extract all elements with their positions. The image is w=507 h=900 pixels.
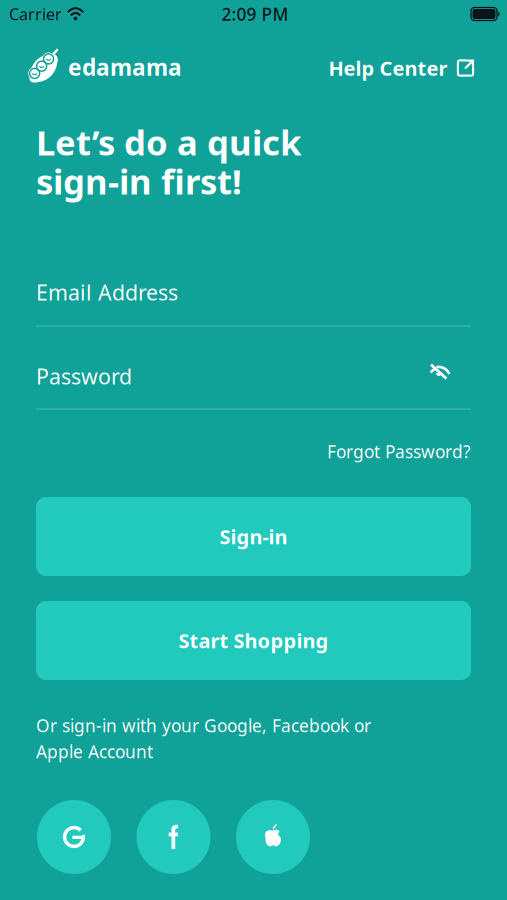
staticText: Or sign-in with your Google, Facebook or: [36, 714, 371, 737]
button[interactable]: Forgot Password?: [36, 440, 471, 462]
staticText: Carrier: [9, 3, 62, 25]
button[interactable]: Show password: [428, 358, 452, 382]
button[interactable]: edamama home: [24, 48, 182, 86]
button[interactable]: Sign in with Google: [37, 800, 111, 874]
button[interactable]: Help Center: [328, 55, 475, 81]
button[interactable]: Sign in with Facebook: [136, 800, 210, 874]
button[interactable]: Sign in with Apple: [236, 800, 310, 874]
staticText: Start Shopping: [178, 627, 328, 654]
staticText: Help Center: [328, 55, 447, 81]
staticText: Apple Account: [36, 740, 153, 763]
staticText: 2:09 PM: [221, 2, 288, 25]
staticText: Email Address: [36, 278, 178, 306]
staticText: Forgot Password?: [327, 440, 471, 463]
staticText: sign-in first!: [36, 158, 242, 204]
button[interactable]: Start Shopping: [36, 601, 471, 680]
staticText: edamama: [68, 52, 182, 82]
button[interactable]: Sign-in: [36, 497, 471, 576]
staticText: Let’s do a quick: [36, 119, 301, 165]
staticText: Password: [36, 362, 132, 390]
staticText: Sign-in: [219, 523, 287, 550]
